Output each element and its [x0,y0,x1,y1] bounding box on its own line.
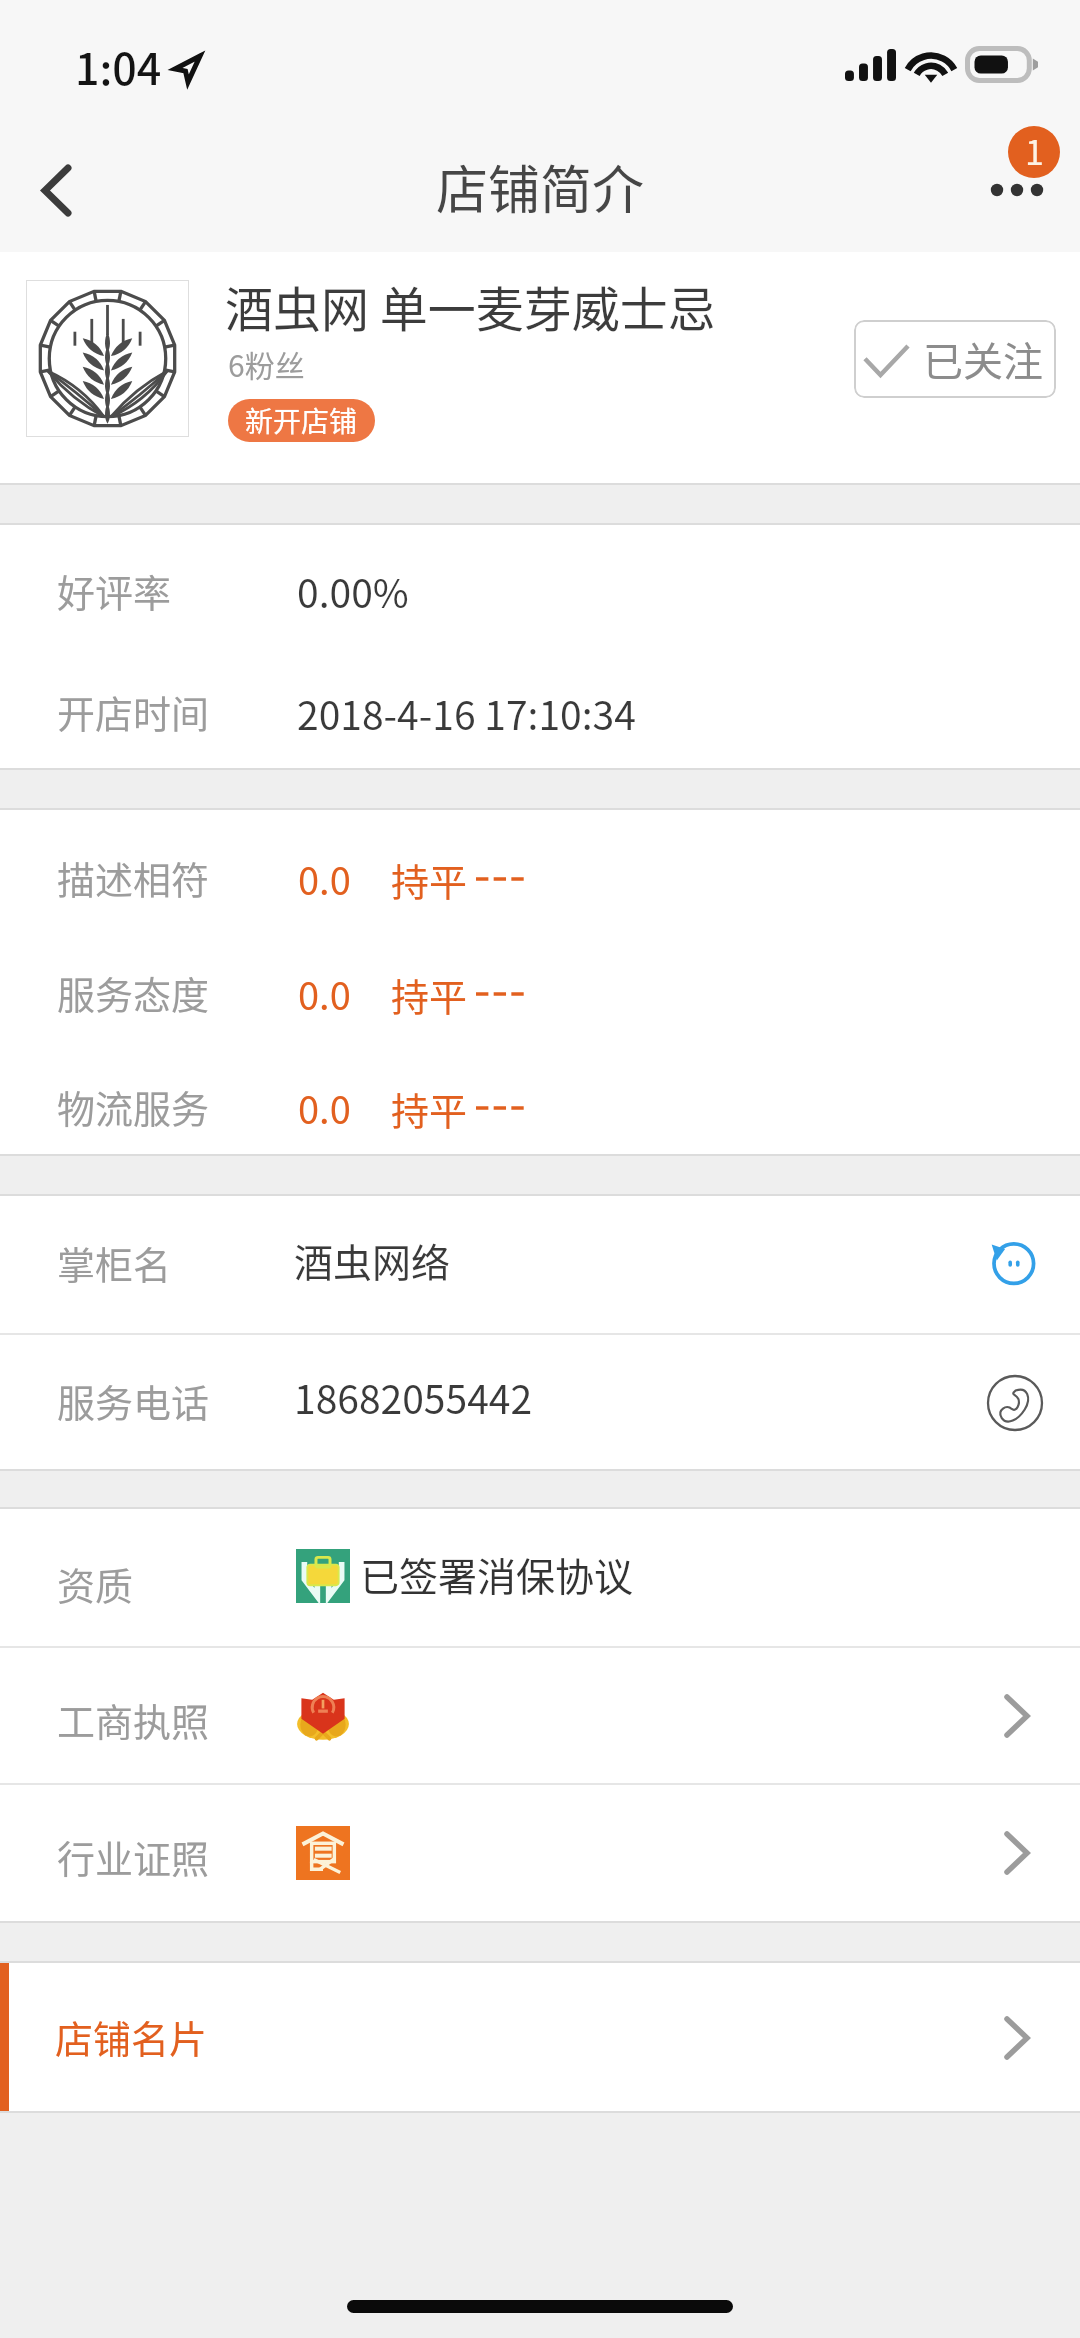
staticText: 持平 [391,852,468,907]
staticText: 酒虫网络 [294,1232,451,1288]
staticText: 0.0 [298,851,351,906]
button[interactable]: 已关注 [854,320,1056,398]
other: Chat with seller [979,1230,1039,1290]
staticText: 18682055442 [294,1369,533,1425]
button[interactable]: More options [960,110,1080,252]
staticText: 0.0 [298,1080,351,1135]
button[interactable]: 资质 [0,1509,1080,1646]
staticText: 持平 [391,967,468,1022]
staticText: 描述相符 [57,850,210,905]
staticText: 工商执照 [57,1692,210,1747]
staticText: 资质 [57,1556,134,1611]
staticText: 6粉丝 [228,342,305,385]
staticText: 掌柜名 [57,1235,172,1290]
staticText: 0.0 [298,966,351,1021]
staticText: 好评率 [57,563,172,618]
button[interactable]: 店铺名片 [0,1963,1080,2111]
staticText: 服务电话 [57,1373,210,1428]
staticText: 服务态度 [57,965,210,1020]
staticText: 持平 [391,1081,468,1136]
staticText: 物流服务 [57,1079,210,1134]
button[interactable]: 新开店铺 [228,399,375,442]
staticText: 新开店铺 [245,400,358,441]
staticText: 1:04 [75,35,162,97]
staticText: 开店时间 [57,684,210,739]
staticText: 店铺名片 [55,2009,208,2064]
staticText: 行业证照 [57,1829,210,1884]
staticText: 酒虫网 单一麦芽威士忌 [225,271,716,341]
staticText: 已签署消保协议 [360,1546,634,1602]
staticText: 2018-4-16 17:10:34 [297,685,636,741]
staticText: 已关注 [923,330,1043,388]
button[interactable]: 掌柜名 [0,1196,1080,1333]
button[interactable]: Back [0,110,116,252]
other: Call seller [979,1367,1039,1427]
button[interactable]: 行业证照 [0,1785,1080,1921]
staticText: 店铺简介 [436,149,645,224]
staticText: 1 [1025,126,1044,175]
button[interactable]: 服务电话 [0,1335,1080,1469]
button[interactable]: 工商执照 [0,1648,1080,1784]
staticText: 0.00% [297,563,409,619]
